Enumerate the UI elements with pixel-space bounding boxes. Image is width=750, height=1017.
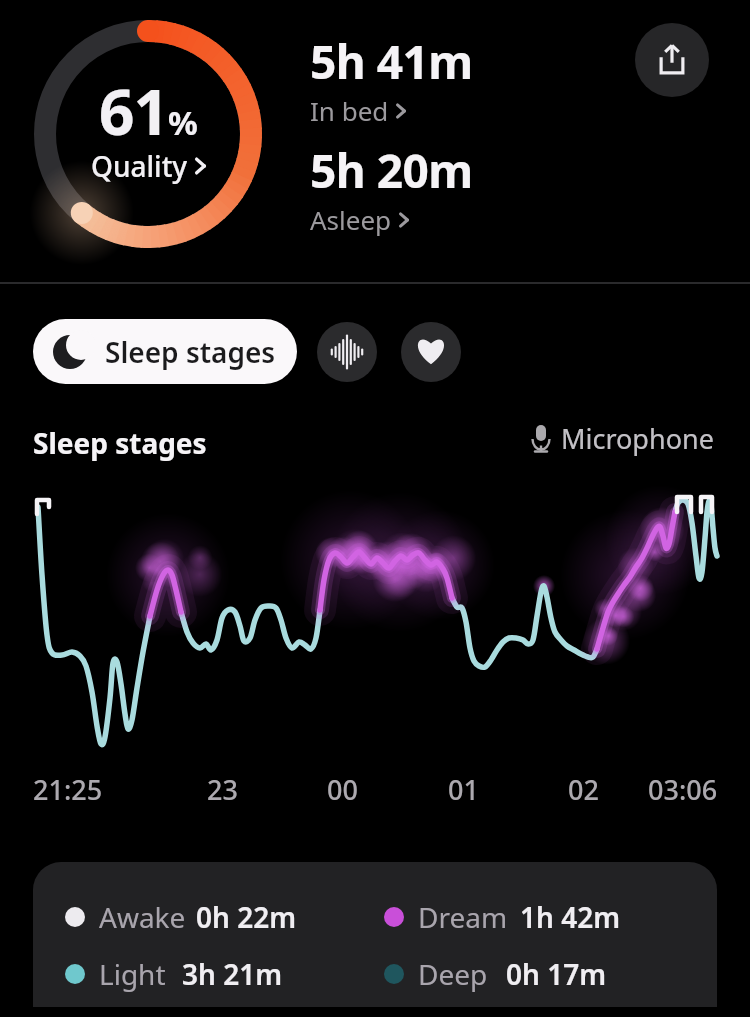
staticText: 23	[207, 771, 238, 808]
staticText: 00	[327, 771, 358, 808]
staticText: 01	[448, 771, 479, 808]
button[interactable]: Microphone	[530, 420, 714, 457]
staticText: Deep	[418, 955, 488, 993]
button[interactable]	[635, 23, 709, 97]
staticText: 0h 17m	[506, 955, 607, 993]
staticText: In bed	[310, 93, 389, 128]
button[interactable]: 61	[33, 19, 263, 249]
staticText: 0h 22m	[196, 898, 297, 936]
staticText: 03:06	[648, 771, 718, 808]
staticText: Asleep	[310, 202, 392, 237]
staticText: 02	[568, 771, 599, 808]
button[interactable]: Asleep	[310, 202, 409, 237]
staticText: 5h 41m	[310, 30, 473, 93]
staticText: 3h 21m	[182, 955, 283, 993]
staticText: Microphone	[561, 420, 714, 457]
button[interactable]	[317, 322, 377, 382]
button[interactable]	[401, 322, 461, 382]
button[interactable]: Awake	[33, 862, 717, 1007]
staticText: Light	[99, 955, 166, 993]
staticText: Quality	[91, 147, 188, 185]
button[interactable]: Sleep stages	[33, 319, 297, 384]
staticText: 21:25	[33, 771, 103, 808]
staticText: 5h 20m	[310, 139, 473, 202]
staticText: 1h 42m	[520, 898, 621, 936]
staticText: %	[168, 100, 198, 145]
staticText: 61	[99, 69, 168, 153]
staticText: Sleep stages	[105, 333, 276, 371]
button[interactable]: In bed	[310, 93, 406, 128]
staticText: Dream	[418, 898, 508, 936]
staticText: Sleep stages	[33, 424, 207, 462]
staticText: Awake	[99, 898, 186, 936]
